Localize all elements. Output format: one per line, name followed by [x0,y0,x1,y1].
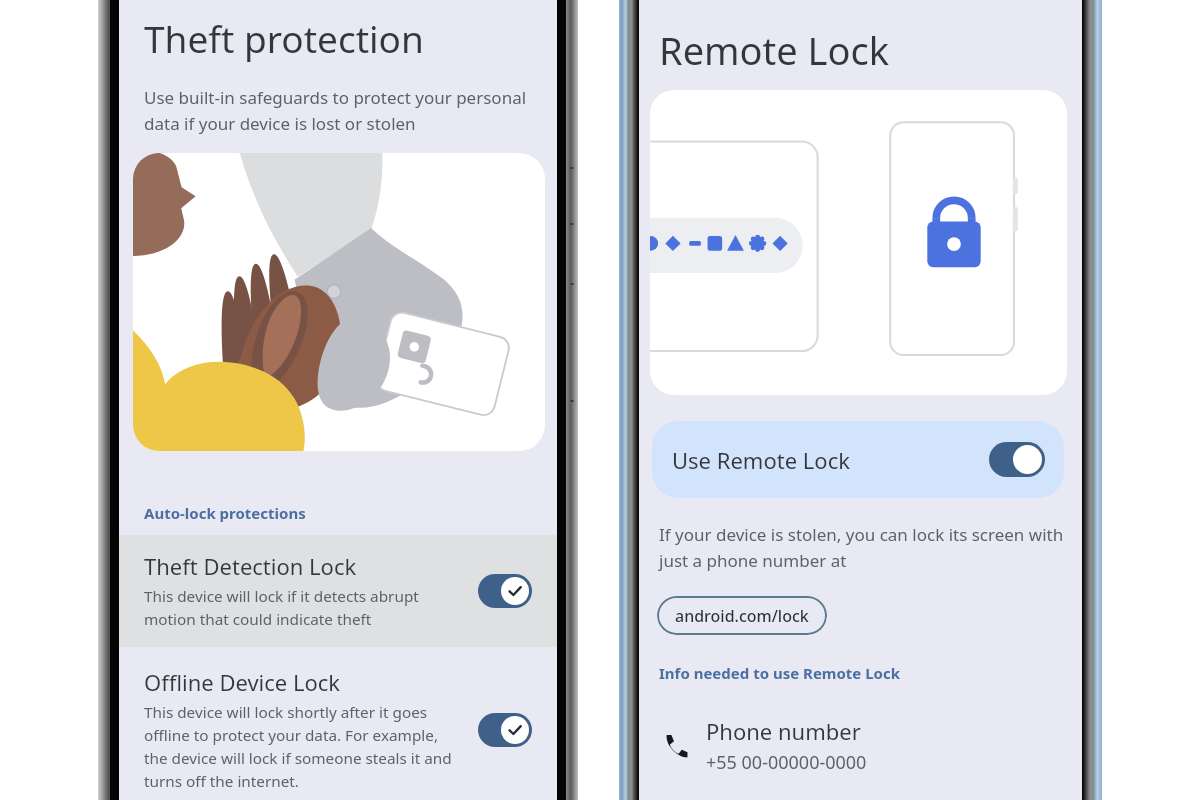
staticText: This device will lock if it detects abru… [144,586,419,630]
staticText: Remote Lock [659,24,890,76]
staticText: If your device is stolen, you can lock i… [659,523,1064,572]
button[interactable]: Toggle setting [478,713,532,747]
staticText: Offline Device Lock [144,667,341,697]
button[interactable]: Theft Detection Lock [119,535,557,647]
button[interactable]: Phone number [639,716,1082,775]
button[interactable]: Toggle setting [478,574,532,608]
staticText: Theft Detection Lock [144,551,357,581]
button[interactable]: Offline Device Lock [119,647,557,800]
staticText: Phone number [706,716,861,746]
staticText: Use Remote Lock [672,445,850,475]
staticText: This device will lock shortly after it g… [144,702,452,792]
staticText: Use built-in safeguards to protect your … [144,86,527,135]
staticText: +55 00-00000-0000 [706,750,867,775]
staticText: Info needed to use Remote Lock [659,663,901,683]
staticText: android.com/lock [675,605,809,627]
button[interactable]: android.com/lock [657,596,827,635]
staticText: Theft protection [144,13,424,63]
button[interactable]: Use Remote Lock [652,421,1064,498]
staticText: Auto-lock protections [144,503,306,523]
